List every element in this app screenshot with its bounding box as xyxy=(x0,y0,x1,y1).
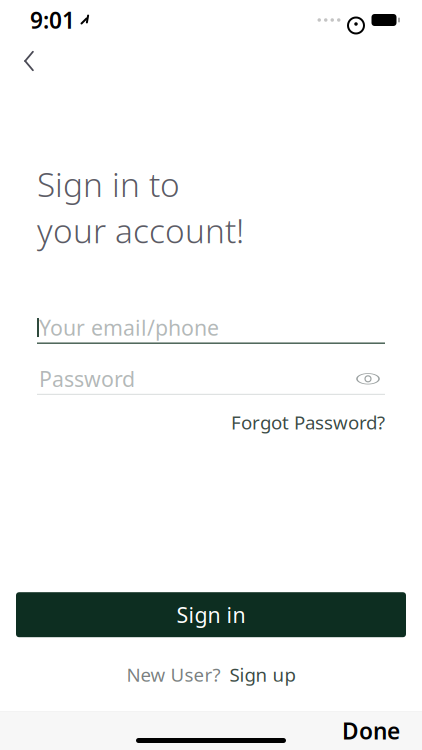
staticText: 9:01 xyxy=(30,5,75,35)
staticText: Your email/phone xyxy=(39,313,219,342)
button[interactable]: Done xyxy=(328,710,414,750)
staticText: your account! xyxy=(37,208,244,253)
staticText: New User? xyxy=(126,662,220,687)
staticText: Sign in xyxy=(176,600,245,629)
button[interactable]: Sign in xyxy=(16,592,406,637)
button[interactable]: Show password xyxy=(351,365,385,393)
staticText: Done xyxy=(342,716,400,746)
button[interactable]: Back xyxy=(6,40,52,82)
button[interactable]: Forgot Password? xyxy=(231,405,385,440)
staticText: Password xyxy=(39,365,135,393)
staticText: Sign up xyxy=(229,662,295,687)
button[interactable]: Sign up xyxy=(229,662,295,687)
staticText: Sign in to xyxy=(37,162,180,206)
staticText: Forgot Password? xyxy=(231,410,385,435)
